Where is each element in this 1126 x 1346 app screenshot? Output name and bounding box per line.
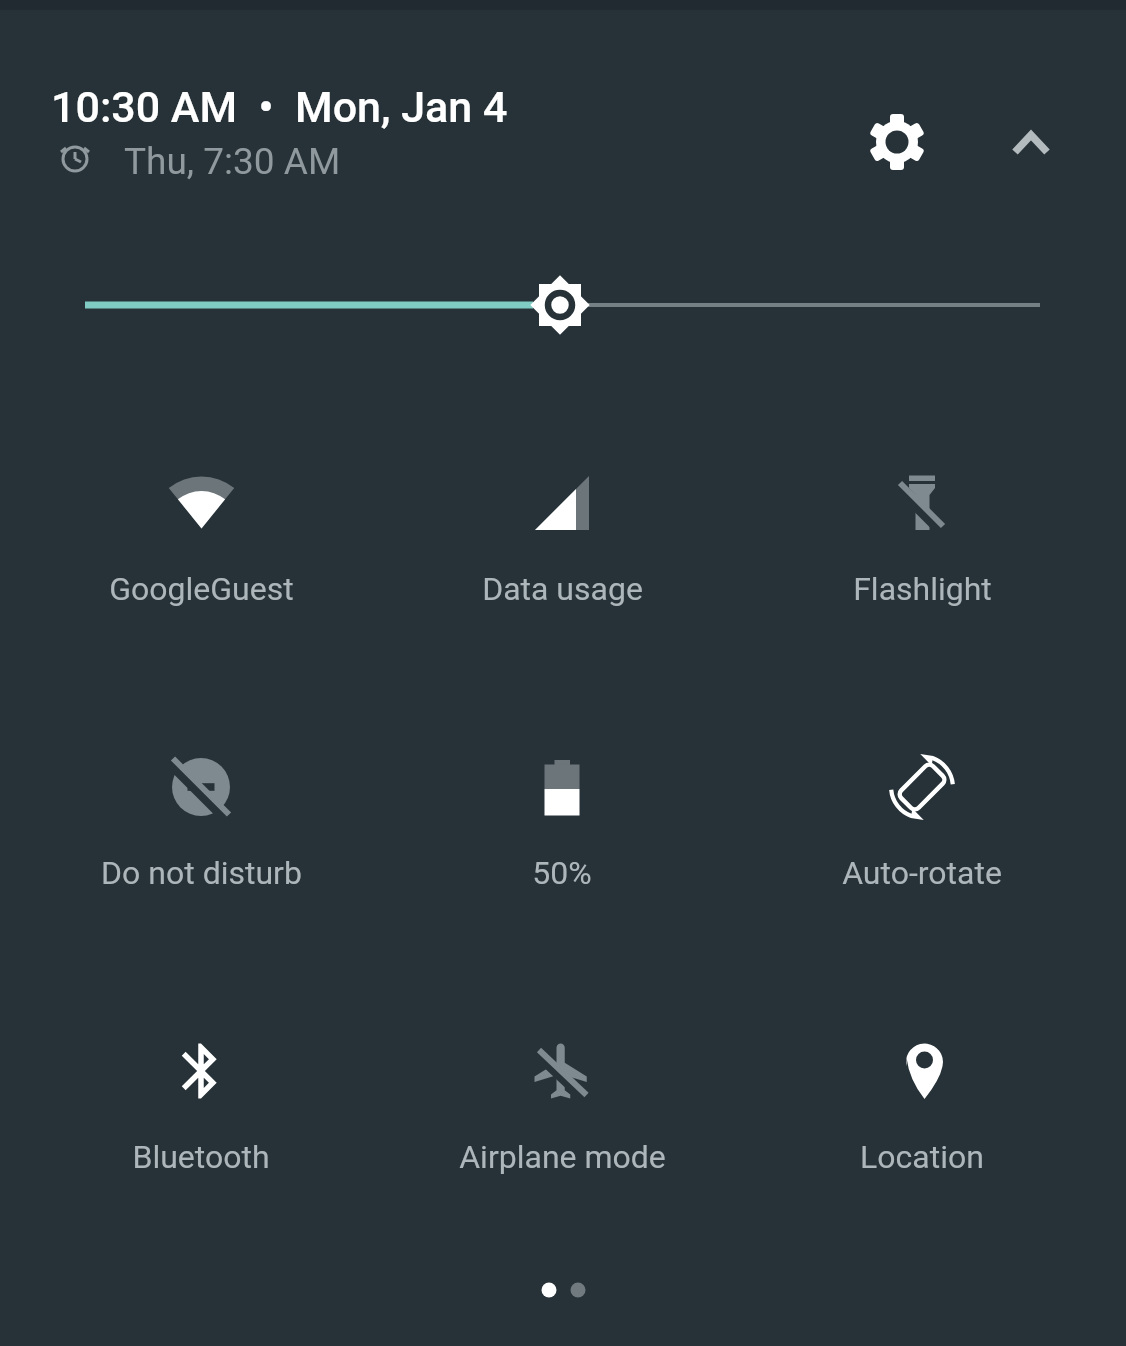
button[interactable]: Airplane mode bbox=[402, 1031, 722, 1181]
staticText: GoogleGuest bbox=[109, 570, 294, 608]
button[interactable]: 50% bbox=[402, 747, 722, 897]
staticText: 10:30 AM • Mon, Jan 4 bbox=[51, 82, 508, 132]
staticText: Airplane mode bbox=[459, 1138, 666, 1176]
staticText: 50% bbox=[532, 854, 592, 892]
staticText: Location bbox=[860, 1138, 984, 1176]
button[interactable] bbox=[863, 108, 931, 176]
button[interactable]: GoogleGuest bbox=[41, 463, 361, 613]
staticText: Bluetooth bbox=[132, 1138, 270, 1176]
button[interactable]: Do not disturb bbox=[41, 747, 361, 897]
staticText: Data usage bbox=[482, 570, 643, 608]
button[interactable]: Data usage bbox=[402, 463, 722, 613]
staticText: Thu, 7:30 AM bbox=[124, 140, 341, 183]
button[interactable]: Flashlight bbox=[762, 463, 1082, 613]
staticText: Auto-rotate bbox=[842, 854, 1002, 892]
button[interactable] bbox=[70, 270, 1056, 340]
button[interactable]: Bluetooth bbox=[41, 1031, 361, 1181]
staticText: Do not disturb bbox=[101, 854, 302, 892]
button[interactable] bbox=[999, 110, 1063, 174]
staticText: Flashlight bbox=[853, 570, 992, 608]
button[interactable]: Location bbox=[762, 1031, 1082, 1181]
button[interactable]: Auto-rotate bbox=[762, 747, 1082, 897]
